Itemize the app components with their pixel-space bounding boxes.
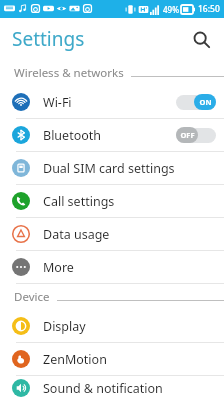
button[interactable]: Bluetooth — [0, 119, 224, 151]
staticText: Display — [43, 318, 216, 335]
staticText: ON — [199, 97, 212, 107]
button[interactable]: More — [0, 251, 224, 283]
staticText: Sound & notification — [43, 380, 216, 397]
staticText: 49% — [163, 4, 179, 15]
staticText: Wireless & networks — [14, 65, 124, 81]
staticText: Call settings — [43, 193, 216, 210]
button[interactable]: Search — [184, 22, 218, 56]
staticText: 16:50 — [198, 3, 220, 15]
button[interactable]: ZenMotion — [0, 343, 224, 375]
button[interactable]: Call settings — [0, 185, 224, 217]
button[interactable]: Sound & notification — [0, 376, 224, 400]
staticText: ZenMotion — [43, 351, 216, 368]
button[interactable]: Display — [0, 310, 224, 342]
staticText: Wi-Fi — [43, 94, 176, 111]
button[interactable]: Toggle off — [176, 127, 216, 143]
button[interactable]: Wi-Fi — [0, 86, 224, 118]
staticText: Data usage — [43, 226, 216, 243]
staticText: Device — [14, 289, 50, 305]
staticText: More — [43, 259, 216, 276]
staticText: Dual SIM card settings — [43, 160, 216, 177]
staticText: OFF — [180, 130, 195, 140]
button[interactable]: Dual SIM card settings — [0, 152, 224, 184]
button[interactable]: Data usage — [0, 218, 224, 250]
staticText: Settings — [12, 26, 85, 52]
button[interactable]: Toggle on — [176, 94, 216, 110]
staticText: Bluetooth — [43, 127, 176, 144]
